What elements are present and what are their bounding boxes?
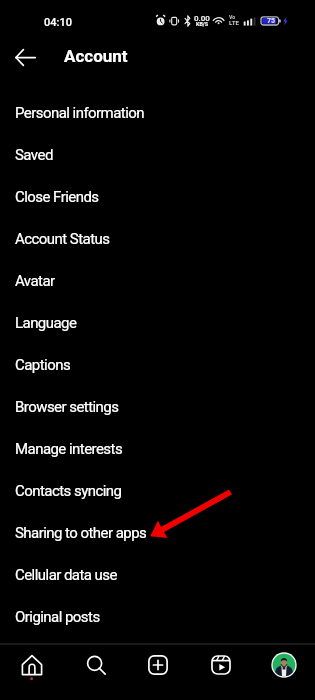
button[interactable]: Create new post xyxy=(126,645,189,685)
staticText: Manage interests xyxy=(15,440,123,458)
staticText: LTE xyxy=(229,19,239,26)
button[interactable]: Personal information xyxy=(0,92,315,134)
button[interactable]: Profile xyxy=(252,645,315,685)
staticText: Language xyxy=(15,314,77,332)
staticText: Close Friends xyxy=(15,188,99,206)
button[interactable]: Avatar xyxy=(0,260,315,302)
staticText: Vo xyxy=(229,14,236,20)
staticText: Avatar xyxy=(15,272,55,290)
staticText: Captions xyxy=(15,356,71,374)
staticText: KB/S xyxy=(196,21,209,27)
button[interactable]: Original posts xyxy=(0,596,315,638)
button[interactable]: Cellular data use xyxy=(0,554,315,596)
staticText: Account Status xyxy=(15,230,110,248)
staticText: Personal information xyxy=(15,104,145,122)
staticText: 04:10 xyxy=(44,16,72,29)
staticText: Browser settings xyxy=(15,398,119,416)
button[interactable]: Back xyxy=(5,37,45,77)
button[interactable]: Reels xyxy=(189,645,252,685)
button[interactable]: Manage interests xyxy=(0,428,315,470)
button[interactable]: Close Friends xyxy=(0,176,315,218)
button[interactable]: Saved xyxy=(0,134,315,176)
button[interactable]: Home xyxy=(0,645,63,685)
staticText: Saved xyxy=(15,146,53,164)
staticText: 0.00 xyxy=(194,14,210,23)
staticText: Sharing to other apps xyxy=(15,524,147,542)
button[interactable]: Language xyxy=(0,302,315,344)
staticText: Contacts syncing xyxy=(15,482,122,500)
button[interactable]: Contacts syncing xyxy=(0,470,315,512)
button[interactable]: Search xyxy=(63,645,126,685)
staticText: Original posts xyxy=(15,608,100,626)
button[interactable]: Account Status xyxy=(0,218,315,260)
staticText: 75 xyxy=(267,17,276,25)
staticText: Cellular data use xyxy=(15,566,117,584)
staticText: Account xyxy=(64,46,128,66)
button[interactable]: Browser settings xyxy=(0,386,315,428)
button[interactable]: Captions xyxy=(0,344,315,386)
button[interactable]: Sharing to other apps xyxy=(0,512,315,554)
